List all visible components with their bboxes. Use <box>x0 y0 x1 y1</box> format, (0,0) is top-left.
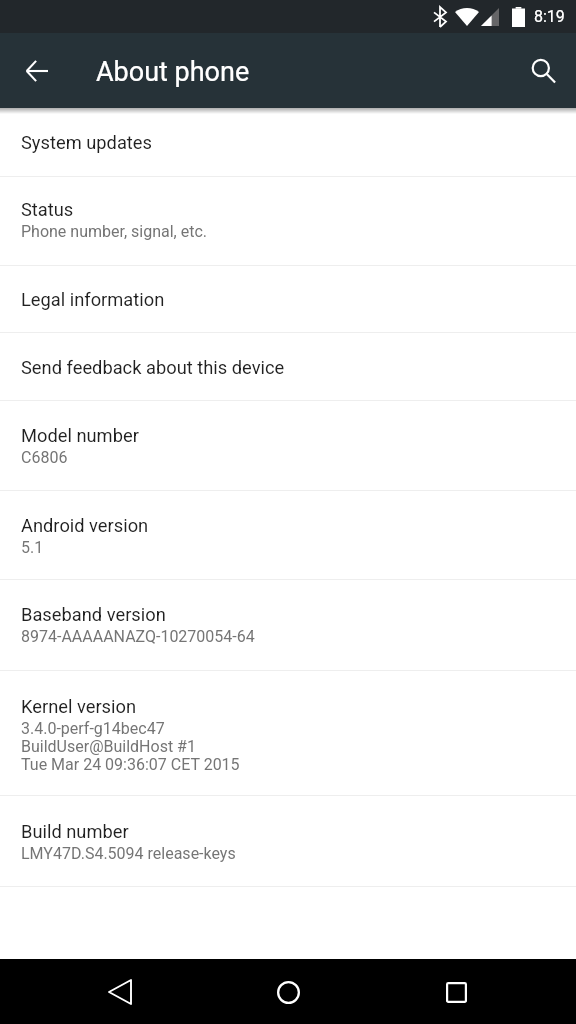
button[interactable]: Search <box>519 47 567 95</box>
staticText: About phone <box>96 56 250 88</box>
button[interactable]: System updates <box>0 108 576 177</box>
button[interactable]: Kernel version <box>0 671 576 796</box>
staticText: Baseband version <box>21 604 166 625</box>
staticText: 3.4.0-perf-g14bec47 BuildUser@BuildHost … <box>21 719 240 774</box>
staticText: Phone number, signal, etc. <box>21 222 208 241</box>
staticText: Android version <box>21 515 149 536</box>
button[interactable]: Back <box>88 960 152 1024</box>
staticText: Kernel version <box>21 696 137 717</box>
button[interactable]: Android version <box>0 491 576 580</box>
staticText: System updates <box>21 132 152 153</box>
button[interactable]: Status <box>0 177 576 266</box>
staticText: 8974-AAAAANAZQ-10270054-64 <box>21 627 255 646</box>
staticText: C6806 <box>21 448 68 467</box>
button[interactable]: Send feedback about this device <box>0 333 576 401</box>
staticText: 5.1 <box>21 538 44 557</box>
button[interactable]: Navigate up <box>13 47 61 95</box>
staticText: Status <box>21 199 74 220</box>
staticText: LMY47D.S4.5094 release-keys <box>21 844 236 863</box>
staticText: Model number <box>21 425 139 446</box>
staticText: Legal information <box>21 289 165 310</box>
button[interactable]: Recent apps <box>424 960 488 1024</box>
button[interactable]: Home <box>256 960 320 1024</box>
staticText: Send feedback about this device <box>21 357 285 378</box>
button[interactable]: Legal information <box>0 266 576 333</box>
button[interactable]: Baseband version <box>0 580 576 671</box>
button[interactable]: Build number <box>0 796 576 887</box>
button[interactable]: Model number <box>0 401 576 491</box>
staticText: Build number <box>21 821 129 842</box>
staticText: 8:19 <box>534 7 565 26</box>
